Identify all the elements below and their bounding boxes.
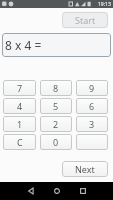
staticText: 1 bbox=[17, 118, 23, 130]
button[interactable]: 3 bbox=[76, 116, 108, 132]
staticText: 9 bbox=[89, 82, 95, 94]
button[interactable]: 8 bbox=[40, 80, 72, 96]
staticText: 7 bbox=[17, 82, 23, 94]
button[interactable] bbox=[70, 182, 96, 200]
button[interactable]: 6 bbox=[76, 98, 108, 114]
staticText: 19:13 bbox=[98, 1, 111, 8]
button[interactable]: 4 bbox=[3, 98, 36, 114]
button[interactable]: 9 bbox=[76, 80, 108, 96]
button[interactable] bbox=[76, 134, 108, 150]
staticText: 5 bbox=[53, 100, 59, 112]
staticText: Next bbox=[75, 163, 95, 175]
staticText: C bbox=[17, 136, 23, 148]
button[interactable]: C bbox=[3, 134, 36, 150]
button[interactable]: Start bbox=[62, 12, 108, 28]
staticText: 8 x 4 = bbox=[5, 37, 42, 53]
staticText: 0 bbox=[53, 136, 59, 148]
button[interactable]: Next bbox=[62, 161, 108, 177]
button[interactable] bbox=[17, 182, 44, 200]
button[interactable]: 0 bbox=[40, 134, 72, 150]
button[interactable] bbox=[44, 182, 70, 200]
staticText: 2 bbox=[53, 118, 59, 130]
button[interactable]: 5 bbox=[40, 98, 72, 114]
staticText: 8 bbox=[53, 82, 59, 94]
button[interactable]: 7 bbox=[3, 80, 36, 96]
staticText: 6 bbox=[89, 100, 95, 112]
staticText: Start bbox=[75, 14, 96, 26]
button[interactable]: 1 bbox=[3, 116, 36, 132]
staticText: 3 bbox=[89, 118, 95, 130]
staticText: 4 bbox=[17, 100, 23, 112]
button[interactable]: 2 bbox=[40, 116, 72, 132]
